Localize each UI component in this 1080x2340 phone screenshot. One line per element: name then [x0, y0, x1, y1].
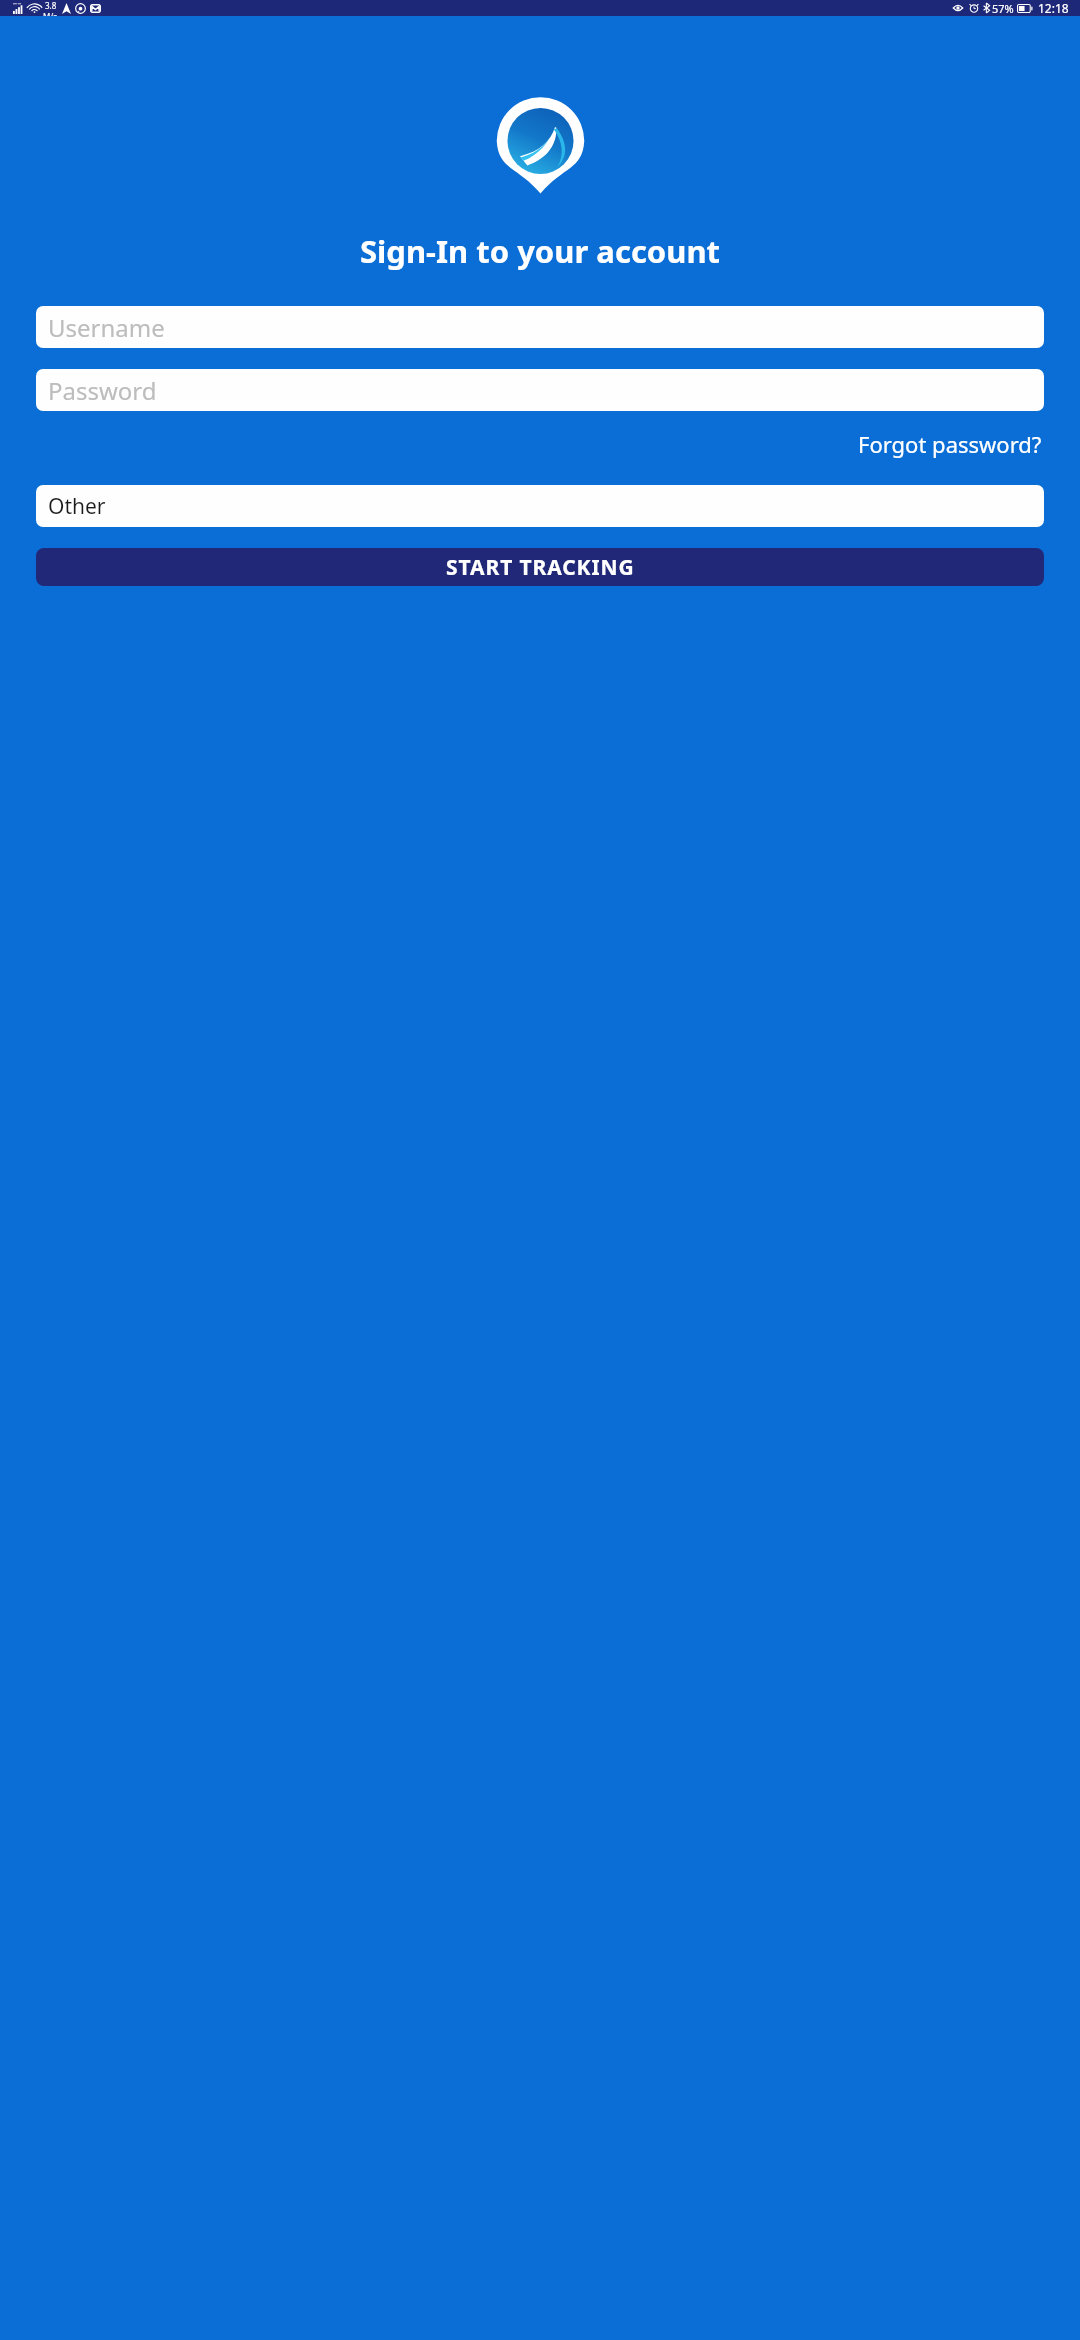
staticText: Username — [48, 311, 165, 344]
staticText: Password — [48, 374, 157, 407]
button[interactable]: Forgot password? — [856, 425, 1044, 463]
staticText: Forgot password? — [858, 429, 1042, 459]
staticText: Sign-In to your account — [0, 230, 1080, 272]
staticText: 12:18 — [1038, 0, 1069, 16]
staticText: M/s — [43, 11, 58, 16]
button[interactable]: Username — [36, 306, 1044, 348]
button[interactable]: START TRACKING — [36, 548, 1044, 586]
staticText: 3.8 — [45, 0, 57, 11]
staticText: START TRACKING — [446, 553, 635, 582]
staticText: Other — [48, 492, 106, 521]
staticText: 57% — [992, 1, 1014, 16]
button[interactable]: Password — [36, 369, 1044, 411]
button[interactable]: Other — [36, 485, 1044, 527]
